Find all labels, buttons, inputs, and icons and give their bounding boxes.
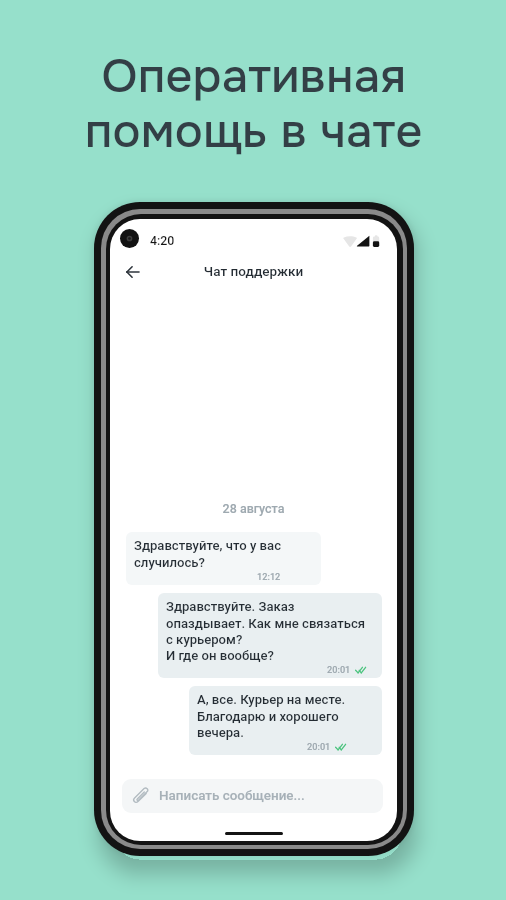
button[interactable]: Написать сообщение... (122, 779, 383, 813)
staticText: Здравствуйте, что у вас случилось? (134, 538, 281, 570)
button[interactable]: Здравствуйте, что у вас случилось? (126, 532, 321, 585)
button[interactable]: Здравствуйте. Заказ опаздывает. Как мне … (158, 593, 382, 678)
staticText: 12:12 (257, 571, 281, 582)
staticText: 20:01 (307, 741, 331, 752)
staticText: Здравствуйте. Заказ опаздывает. Как мне … (166, 599, 366, 663)
staticText: Написать сообщение... (159, 788, 305, 804)
staticText: 28 августа (110, 501, 397, 516)
staticText: Оперативная помощь в чате (1, 46, 506, 161)
staticText: 4:20 (150, 233, 175, 248)
staticText: 20:01 (327, 664, 351, 675)
button[interactable]: Back (112, 253, 152, 291)
staticText: Чат поддержки (110, 263, 397, 279)
button[interactable]: А, все. Курьер на месте. Благодарю и хор… (189, 686, 382, 755)
staticText: А, все. Курьер на месте. Благодарю и хор… (197, 692, 346, 740)
